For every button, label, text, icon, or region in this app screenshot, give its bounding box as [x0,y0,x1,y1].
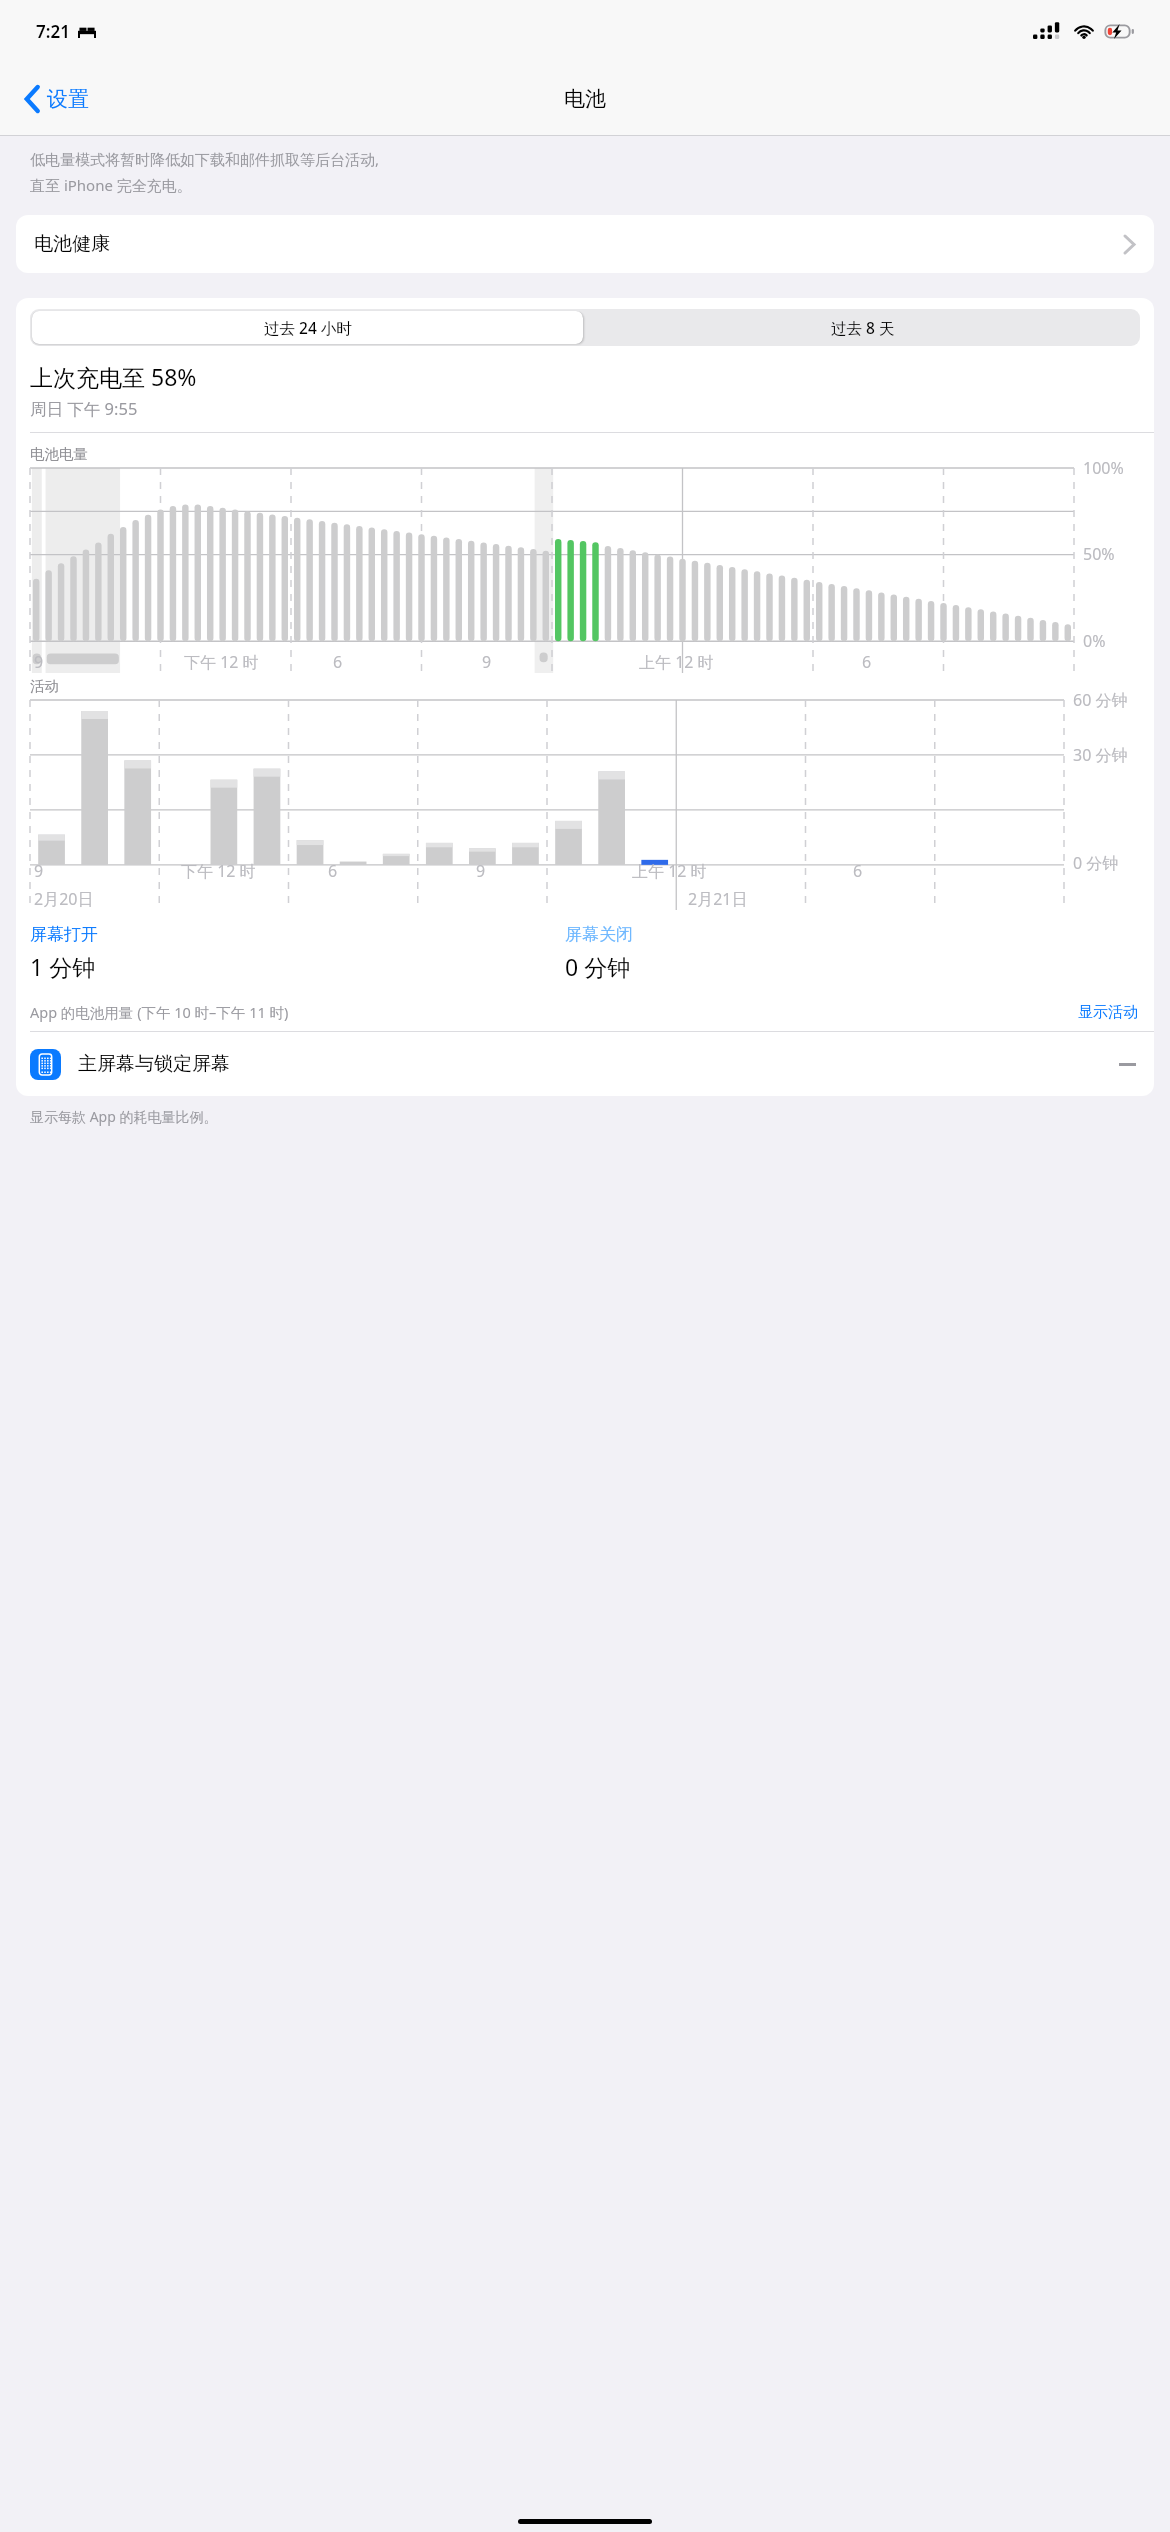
staticText: App 的电池用量 (下午 10 时–下午 11 时) [30,1002,289,1022]
staticText: 100% [1083,457,1124,479]
staticText: 主屏幕与锁定屏幕 [78,1052,230,1076]
staticText: 9 [34,651,44,673]
button[interactable]: 设置 [18,80,97,118]
staticText: 2月21日 [688,888,748,910]
button[interactable]: 主屏幕与锁定屏幕 [16,1032,1154,1096]
staticText: 9 [476,860,486,882]
staticText: 显示每款 App 的耗电量比例。 [30,1107,218,1126]
staticText: 50% [1083,543,1115,565]
staticText: 低电量模式将暂时降低如下载和邮件抓取等后台活动, [30,149,380,169]
staticText: 下午 12 时 [184,651,259,673]
staticText: 过去 8 天 [831,317,895,338]
staticText: 0 分钟 [1073,852,1119,874]
staticText: 2月20日 [34,888,94,910]
staticText: 上次充电至 58% [30,361,197,392]
staticText: 电池电量 [30,445,88,463]
staticText: 屏幕打开 [30,924,98,945]
staticText: 6 [862,651,872,673]
staticText: 屏幕关闭 [565,924,633,945]
button[interactable]: 过去 24 小时 [32,311,583,344]
staticText: 周日 下午 9:55 [30,397,138,420]
staticText: 设置 [47,86,89,112]
staticText: 30 分钟 [1073,744,1128,766]
staticText: 过去 24 小时 [264,317,352,338]
staticText: 60 分钟 [1073,689,1128,711]
staticText: 9 [34,860,44,882]
staticText: 6 [853,860,863,882]
staticText: 活动 [30,677,59,695]
staticText: 电池健康 [34,232,110,256]
staticText: 9 [482,651,492,673]
button[interactable]: 电池健康 [16,215,1154,273]
other: Battery Health [1125,236,1134,253]
staticText: 7:21 [36,20,70,43]
staticText: 0% [1083,630,1106,652]
staticText: 上午 12 时 [639,651,714,673]
staticText: 1 分钟 [30,951,96,982]
staticText: 6 [328,860,338,882]
staticText: 直至 iPhone 完全充电。 [30,175,192,195]
staticText: 0 分钟 [565,951,631,982]
staticText: 电池 [564,86,606,112]
staticText: 上午 12 时 [632,860,707,882]
staticText: 6 [333,651,343,673]
button[interactable]: 过去 8 天 [585,309,1140,346]
staticText: 下午 12 时 [181,860,256,882]
button[interactable]: 显示活动 [1078,1003,1138,1022]
